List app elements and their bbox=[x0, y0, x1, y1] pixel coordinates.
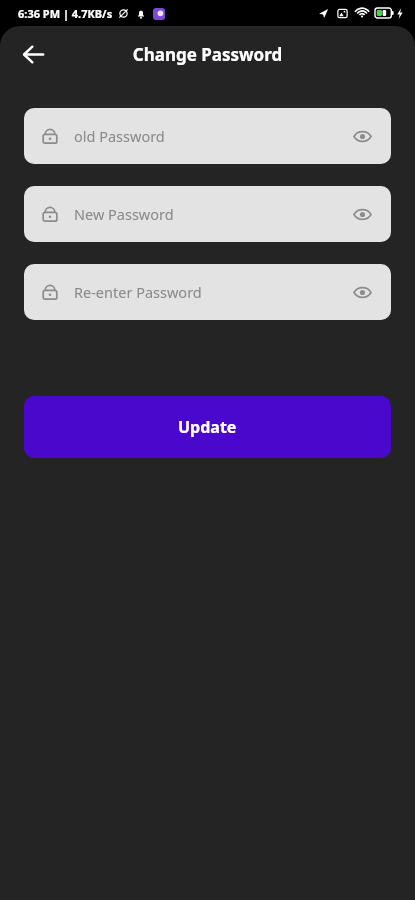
staticText: New Password bbox=[74, 204, 341, 224]
button[interactable]: Re-enter Password bbox=[24, 264, 391, 320]
button[interactable]: Show password bbox=[341, 271, 383, 313]
staticText: 6:36 PM | 4.7KB/s bbox=[18, 6, 113, 21]
button[interactable]: Back bbox=[12, 33, 54, 75]
button[interactable]: New Password bbox=[24, 186, 391, 242]
button[interactable]: Show password bbox=[341, 193, 383, 235]
staticText: Re-enter Password bbox=[74, 282, 341, 302]
button[interactable]: Update bbox=[24, 396, 391, 458]
staticText: Update bbox=[178, 416, 237, 438]
button[interactable]: old Password bbox=[24, 108, 391, 164]
staticText: old Password bbox=[74, 126, 341, 146]
staticText: Change Password bbox=[0, 43, 415, 66]
button[interactable]: Show password bbox=[341, 115, 383, 157]
